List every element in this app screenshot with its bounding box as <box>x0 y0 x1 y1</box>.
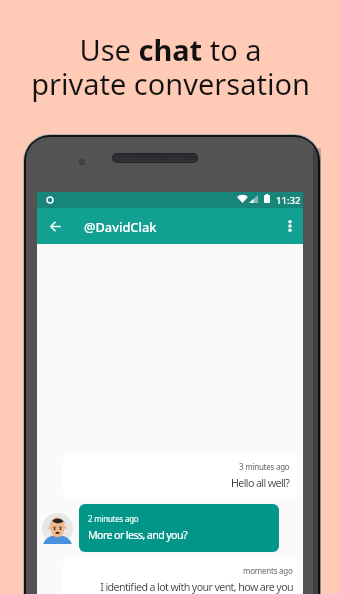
staticText: I identified a lot with your vent, how a… <box>73 580 293 594</box>
button[interactable]: @DavidClak <box>79 208 162 244</box>
button[interactable]: 2 minutes ago <box>79 504 279 552</box>
staticText: 11:32 <box>276 194 301 207</box>
staticText: More or less, and you? <box>88 528 187 543</box>
button[interactable]: 3 minutes ago <box>63 453 300 499</box>
other: Avatar <box>42 513 73 544</box>
staticText: 3 minutes ago <box>239 461 290 472</box>
staticText: @DavidClak <box>84 218 157 235</box>
staticText: moments ago <box>243 565 293 576</box>
staticText: Use chat to a private conversation <box>31 30 310 103</box>
staticText: Hello all well? <box>231 476 290 491</box>
button[interactable]: More options <box>275 208 303 244</box>
button[interactable]: moments ago <box>63 557 300 594</box>
button[interactable]: Back <box>40 208 71 244</box>
staticText: 2 minutes ago <box>88 513 139 524</box>
